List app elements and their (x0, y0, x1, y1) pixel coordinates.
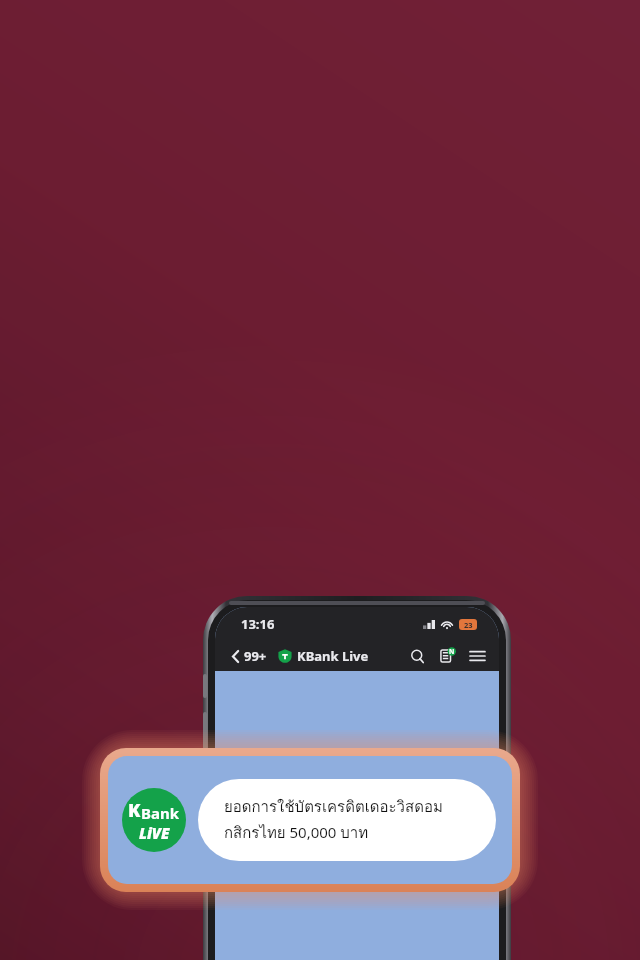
staticText: 23 (464, 620, 473, 630)
button[interactable]: Back (226, 647, 244, 665)
staticText: N (449, 647, 455, 656)
button[interactable]: Search (406, 645, 428, 667)
staticText: K (128, 798, 141, 823)
staticText: KBank Live (297, 647, 369, 665)
staticText: LiVE (139, 823, 170, 843)
staticText: กสิกรไทย 50,000 บาท (224, 821, 369, 845)
staticText: ยอดการใช้บัตรเครดิตเดอะวิสดอม (224, 795, 443, 819)
staticText: 13:16 (241, 615, 275, 633)
button[interactable]: Notifications (436, 645, 458, 667)
staticText: Bank (141, 803, 180, 823)
button[interactable]: Menu (466, 645, 488, 667)
staticText: 99+ (244, 647, 267, 665)
button[interactable]: K (108, 756, 512, 884)
